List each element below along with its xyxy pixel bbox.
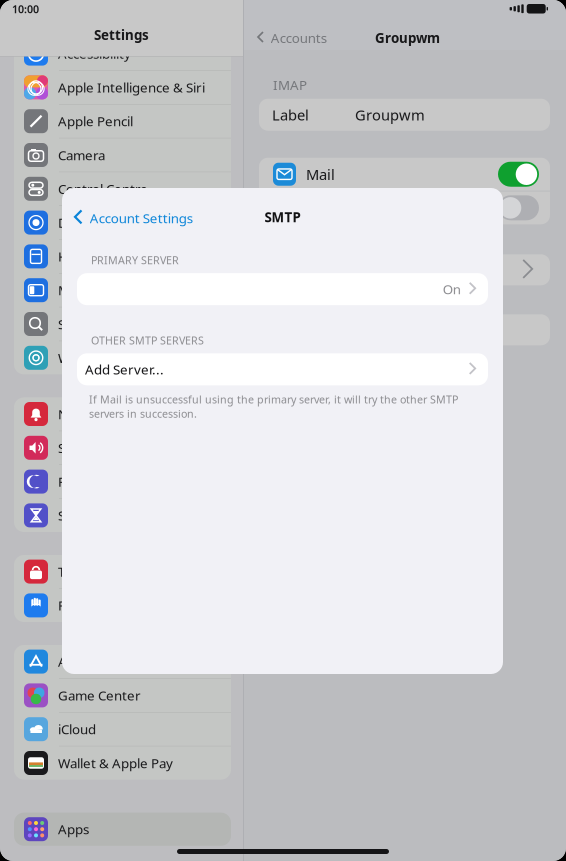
staticText: Privacy & Security xyxy=(58,596,168,614)
staticText: Settings xyxy=(94,26,149,44)
staticText: OTHER SMTP SERVERS xyxy=(91,333,204,347)
button[interactable]: Screen Time xyxy=(14,499,231,532)
staticText: Camera xyxy=(58,146,105,164)
button[interactable]: Add Server... xyxy=(77,353,488,385)
button[interactable]: Multitasking & Gestures xyxy=(14,274,231,307)
staticText: Accounts xyxy=(271,29,327,47)
staticText: Screen Time xyxy=(58,506,133,524)
button[interactable]: Camera xyxy=(14,138,231,172)
staticText: Sounds xyxy=(58,439,103,457)
staticText: Touch ID & Passcode xyxy=(58,563,185,580)
staticText: Apple Intelligence & Siri xyxy=(58,78,205,96)
staticText: SMTP xyxy=(264,208,300,226)
button[interactable]: Sounds xyxy=(14,431,231,465)
button[interactable]: Home Screen & App Library xyxy=(14,240,231,274)
button[interactable]: Display & Brightness xyxy=(14,206,231,240)
button[interactable]: Focus xyxy=(14,465,231,499)
button[interactable]: Control Centre xyxy=(14,172,231,206)
button[interactable]: Notifications xyxy=(14,397,231,431)
button[interactable]: On xyxy=(77,273,488,305)
staticText: Apps xyxy=(58,820,89,838)
staticText: PRIMARY SERVER xyxy=(91,253,179,267)
staticText: Apple Pencil xyxy=(58,112,133,130)
staticText: App Store xyxy=(58,653,119,670)
button[interactable]: Wallpaper xyxy=(14,341,231,374)
button[interactable]: Game Center xyxy=(14,679,231,713)
button[interactable]: Mail on xyxy=(498,162,539,187)
staticText: On xyxy=(443,280,461,298)
button[interactable]: Apple Intelligence & Siri xyxy=(14,71,231,105)
button[interactable]: Accessibility xyxy=(14,37,231,71)
staticText: Notifications xyxy=(58,405,135,423)
staticText: Label xyxy=(272,105,309,124)
staticText: Multitasking & Gestures xyxy=(58,281,205,299)
staticText: Add Server... xyxy=(85,360,164,378)
staticText: Focus xyxy=(58,473,93,490)
staticText: Account Settings xyxy=(90,209,193,227)
staticText: Search xyxy=(58,315,99,333)
staticText: Accessibility xyxy=(58,45,131,62)
button[interactable]: Wallet & Apple Pay xyxy=(14,746,231,780)
staticText: iCloud xyxy=(58,720,96,738)
button[interactable]: Accounts xyxy=(258,25,327,51)
staticText: Mail xyxy=(306,164,335,184)
button[interactable]: App Store xyxy=(14,645,231,679)
staticText: 10:00 xyxy=(12,2,39,16)
button[interactable]: Search xyxy=(14,307,231,341)
staticText: Wallpaper xyxy=(58,349,120,367)
button[interactable]: Account Settings xyxy=(75,203,193,233)
staticText: Groupwm xyxy=(375,29,440,47)
staticText: Game Center xyxy=(58,686,141,704)
button[interactable]: Notes off xyxy=(498,195,539,220)
button[interactable]: Privacy & Security xyxy=(14,589,231,622)
staticText: Groupwm xyxy=(355,105,425,124)
staticText: If Mail is unsuccessful using the primar… xyxy=(89,392,458,421)
button[interactable]: Apple Pencil xyxy=(14,105,231,138)
button[interactable]: Touch ID & Passcode xyxy=(14,555,231,589)
staticText: Control Centre xyxy=(58,180,148,198)
staticText: IMAP xyxy=(273,76,307,94)
staticText: Home Screen & App Library xyxy=(58,247,221,265)
button[interactable]: Apps xyxy=(14,813,231,846)
staticText: Display & Brightness xyxy=(58,214,185,231)
staticText: Wallet & Apple Pay xyxy=(58,754,173,772)
button[interactable]: iCloud xyxy=(14,713,231,746)
